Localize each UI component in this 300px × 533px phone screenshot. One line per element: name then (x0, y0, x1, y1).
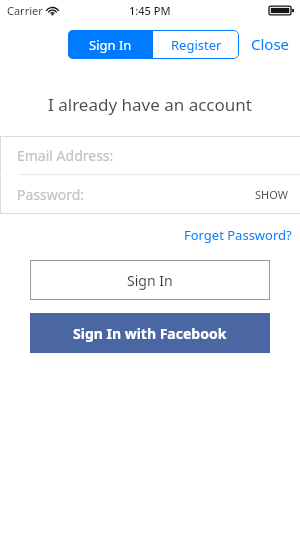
button[interactable]: Email Address: (1, 137, 300, 174)
staticText: Email Address: (17, 146, 114, 165)
button[interactable]: Sign In (68, 30, 153, 59)
staticText: SHOW (255, 187, 288, 202)
other: Wi-Fi signal (46, 5, 59, 16)
staticText: 1:45 PM (129, 3, 171, 18)
button[interactable]: Close (247, 28, 294, 60)
staticText: Password: (17, 185, 85, 204)
button[interactable]: Sign In (30, 260, 270, 300)
staticText: Sign In (89, 36, 132, 54)
button[interactable]: SHOW (243, 175, 300, 213)
staticText: Register (171, 36, 222, 54)
staticText: Sign In (127, 271, 173, 290)
button[interactable]: Register (153, 30, 239, 59)
button[interactable]: Sign In with Facebook (30, 313, 270, 353)
staticText: Carrier (7, 3, 43, 18)
button[interactable]: Forget Password? (184, 224, 300, 246)
button[interactable]: Password: (1, 175, 243, 213)
staticText: Sign In with Facebook (73, 324, 227, 343)
staticText: I already have an account (0, 93, 300, 116)
staticText: Forget Password? (184, 226, 292, 244)
other: Battery full (269, 5, 294, 16)
staticText: Close (251, 34, 290, 54)
